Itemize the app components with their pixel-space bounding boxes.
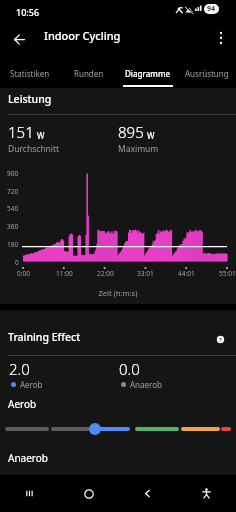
staticText: Maximum <box>118 143 159 155</box>
staticText: Training Effect <box>8 330 81 344</box>
staticText: Aerob <box>8 397 37 411</box>
staticText: 540 <box>7 204 19 213</box>
staticText: 94 <box>207 4 216 14</box>
button[interactable]: Statistiken <box>0 57 59 88</box>
staticText: Runden <box>74 68 104 79</box>
staticText: 180 <box>7 240 19 249</box>
staticText: ? <box>219 336 222 344</box>
staticText: W <box>147 130 155 141</box>
staticText: Anaerob <box>130 379 162 390</box>
staticText: 55:01 <box>219 269 236 278</box>
staticText: 44:01 <box>178 269 195 278</box>
button[interactable]: Home <box>59 475 118 512</box>
staticText: Aerob <box>20 379 43 390</box>
staticText: Statistiken <box>10 68 50 79</box>
button[interactable]: Help <box>213 332 228 347</box>
staticText: Leistung <box>8 92 52 106</box>
staticText: Anaerob <box>8 451 48 465</box>
staticText: 0.0 <box>119 359 140 379</box>
button[interactable]: Runden <box>59 57 118 88</box>
staticText: 360 <box>7 222 19 231</box>
staticText: Diagramme <box>125 68 171 79</box>
staticText: 720 <box>7 187 19 196</box>
staticText: 33:01 <box>137 269 154 278</box>
button[interactable]: More options <box>205 22 236 53</box>
staticText: 895 <box>118 122 144 142</box>
button[interactable]: Back <box>2 22 37 56</box>
staticText: 22:00 <box>97 269 114 278</box>
button[interactable]: Diagramme <box>118 57 177 88</box>
staticText: 11:00 <box>56 269 73 278</box>
button[interactable]: Back <box>118 475 177 512</box>
staticText: Zeit (h:m:s) <box>0 288 236 298</box>
staticText: Indoor Cycling <box>44 28 121 43</box>
staticText: Ausrüstung <box>185 68 229 79</box>
button[interactable]: Accessibility <box>177 475 236 512</box>
staticText: 2.0 <box>9 359 30 379</box>
staticText: 10:56 <box>16 6 40 18</box>
staticText: 900 <box>7 169 19 178</box>
button[interactable]: Recent apps <box>0 475 59 512</box>
staticText: 0:00 <box>17 269 30 278</box>
staticText: Durchschnitt <box>8 143 60 155</box>
staticText: 151 <box>8 122 34 142</box>
staticText: W <box>37 130 45 141</box>
button[interactable]: Ausrüstung <box>177 57 236 88</box>
staticText: 0 <box>15 258 19 267</box>
